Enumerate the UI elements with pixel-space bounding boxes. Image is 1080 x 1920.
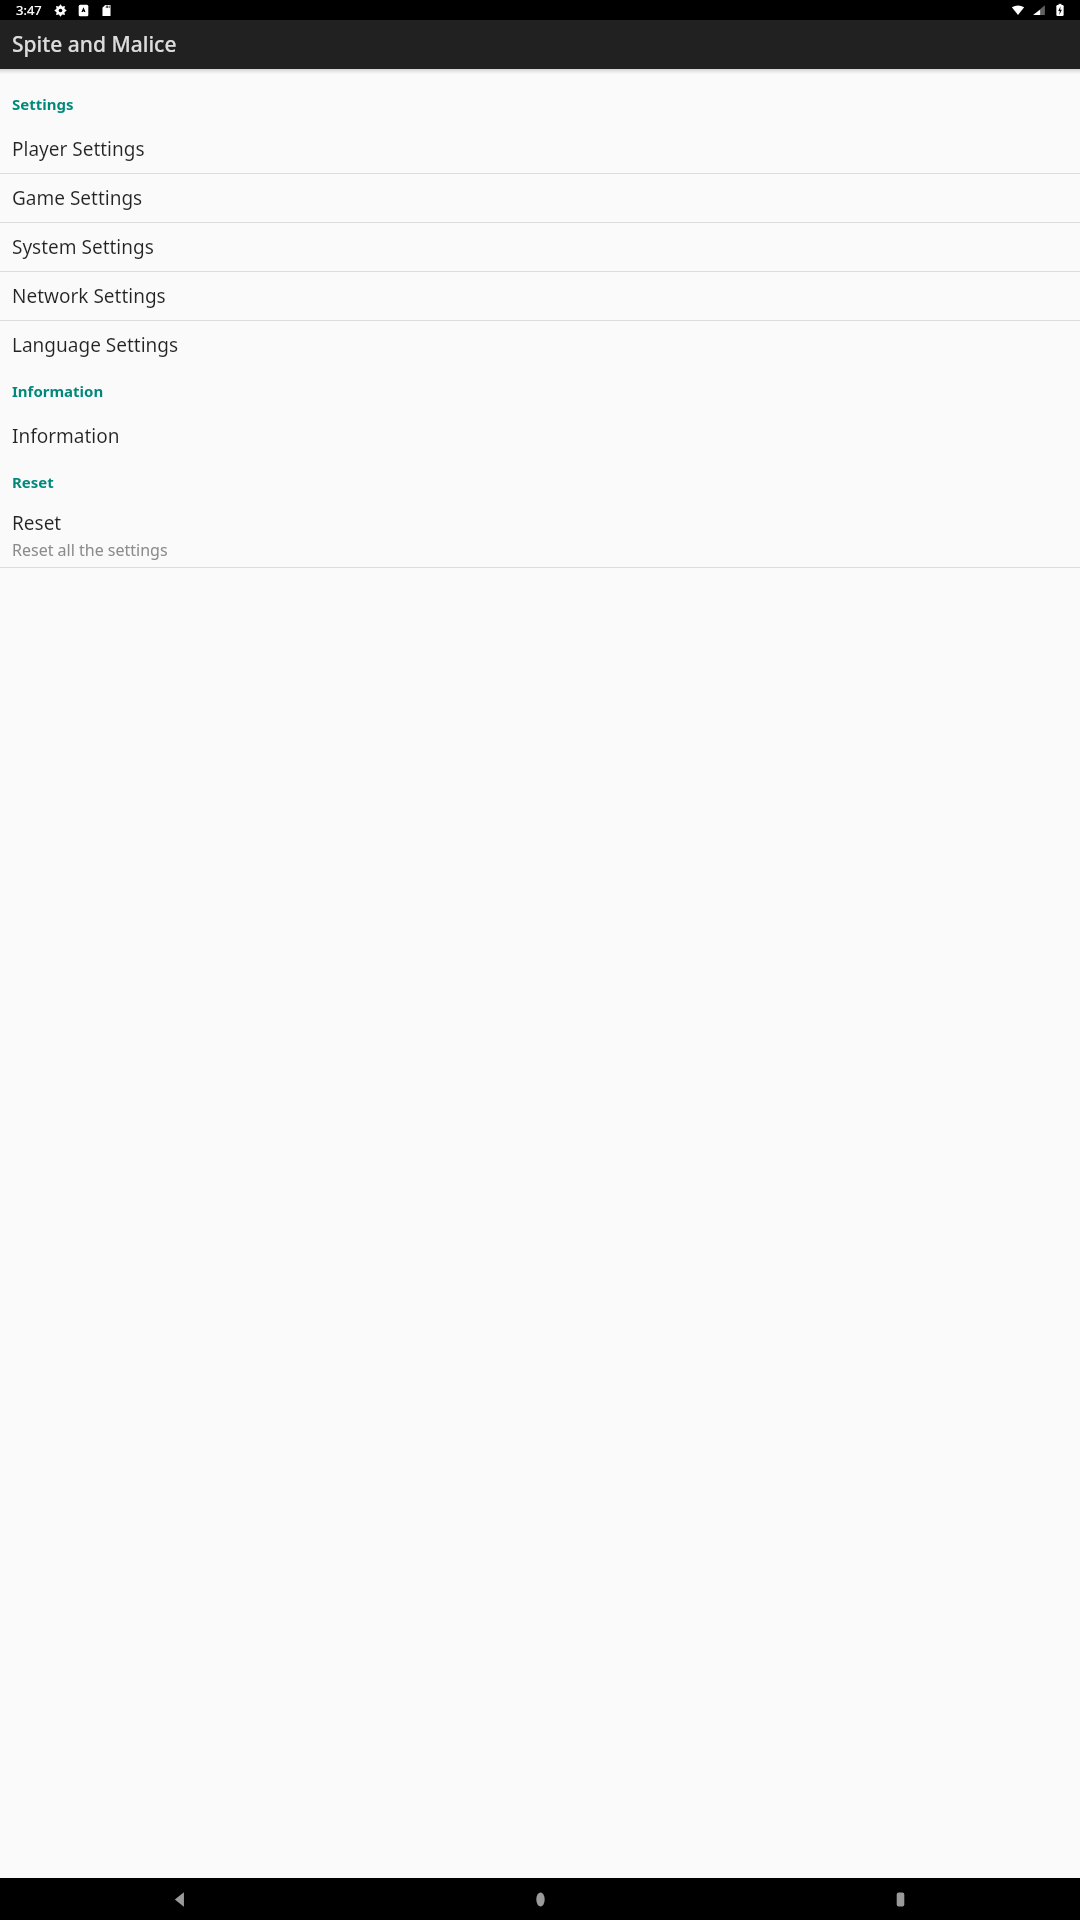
staticText: 3:47 — [16, 1, 42, 19]
staticText: Game Settings — [12, 185, 143, 211]
button[interactable]: Information — [0, 412, 1080, 460]
staticText: Spite and Malice — [12, 30, 177, 59]
staticText: Reset — [12, 510, 62, 536]
staticText: Network Settings — [12, 283, 166, 309]
button[interactable]: Reset — [0, 503, 1080, 567]
staticText: Player Settings — [12, 136, 145, 162]
staticText: Language Settings — [12, 332, 179, 358]
staticText: Reset — [12, 472, 54, 492]
button[interactable]: Language Settings — [0, 321, 1080, 369]
button[interactable]: Game Settings — [0, 174, 1080, 222]
button[interactable]: Network Settings — [0, 272, 1080, 320]
button[interactable]: Back — [0, 1878, 360, 1920]
staticText: Information — [12, 423, 120, 449]
button[interactable]: Home — [360, 1878, 720, 1920]
staticText: Reset all the settings — [12, 539, 168, 561]
staticText: Information — [12, 381, 104, 401]
button[interactable]: Recents — [720, 1878, 1080, 1920]
button[interactable]: System Settings — [0, 223, 1080, 271]
staticText: Settings — [12, 94, 74, 114]
staticText: System Settings — [12, 234, 154, 260]
button[interactable]: Player Settings — [0, 125, 1080, 173]
